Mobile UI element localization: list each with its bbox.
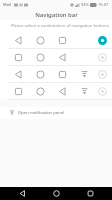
button[interactable]: Back	[10, 187, 34, 200]
button[interactable]	[0, 66, 112, 83]
staticText: Mail	[3, 2, 12, 7]
button[interactable]: Recents	[78, 187, 102, 200]
button[interactable]: Open notification panel	[0, 107, 112, 119]
staticText: 94%	[81, 2, 89, 7]
staticText: Navigation bar	[35, 11, 78, 19]
staticText: Open notification panel	[18, 110, 65, 116]
button[interactable]	[0, 83, 112, 100]
staticText: 15:07	[98, 2, 109, 7]
button[interactable]: Home	[44, 187, 68, 200]
button[interactable]	[0, 49, 112, 66]
button[interactable]	[0, 32, 112, 49]
staticText: Please select a combination of navigatio…	[11, 23, 109, 29]
